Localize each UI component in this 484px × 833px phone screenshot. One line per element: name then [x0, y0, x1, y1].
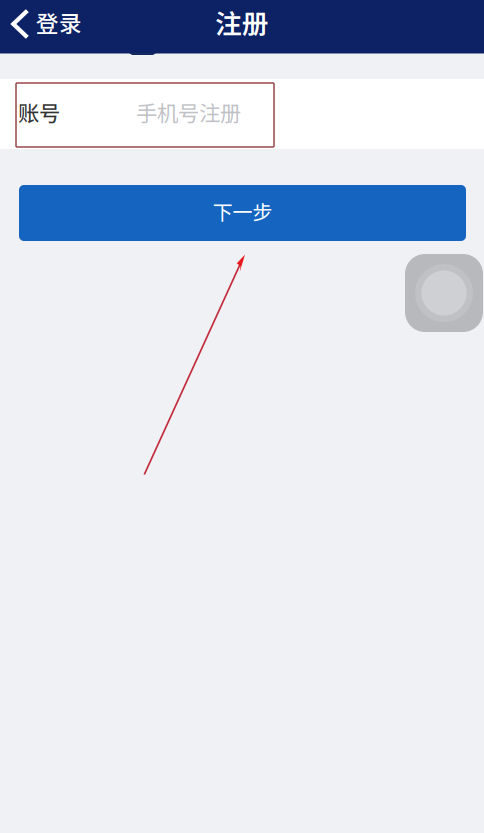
staticText: 注册: [215, 3, 269, 41]
button[interactable]: 登录: [0, 0, 90, 44]
staticText: 账号: [18, 97, 60, 127]
staticText: 登录: [36, 6, 82, 38]
button[interactable]: AssistiveTouch: [405, 254, 483, 332]
staticText: 手机号注册: [136, 97, 241, 127]
button[interactable]: 下一步: [19, 185, 466, 241]
button[interactable]: 账号: [0, 79, 484, 149]
staticText: 下一步: [212, 196, 272, 225]
